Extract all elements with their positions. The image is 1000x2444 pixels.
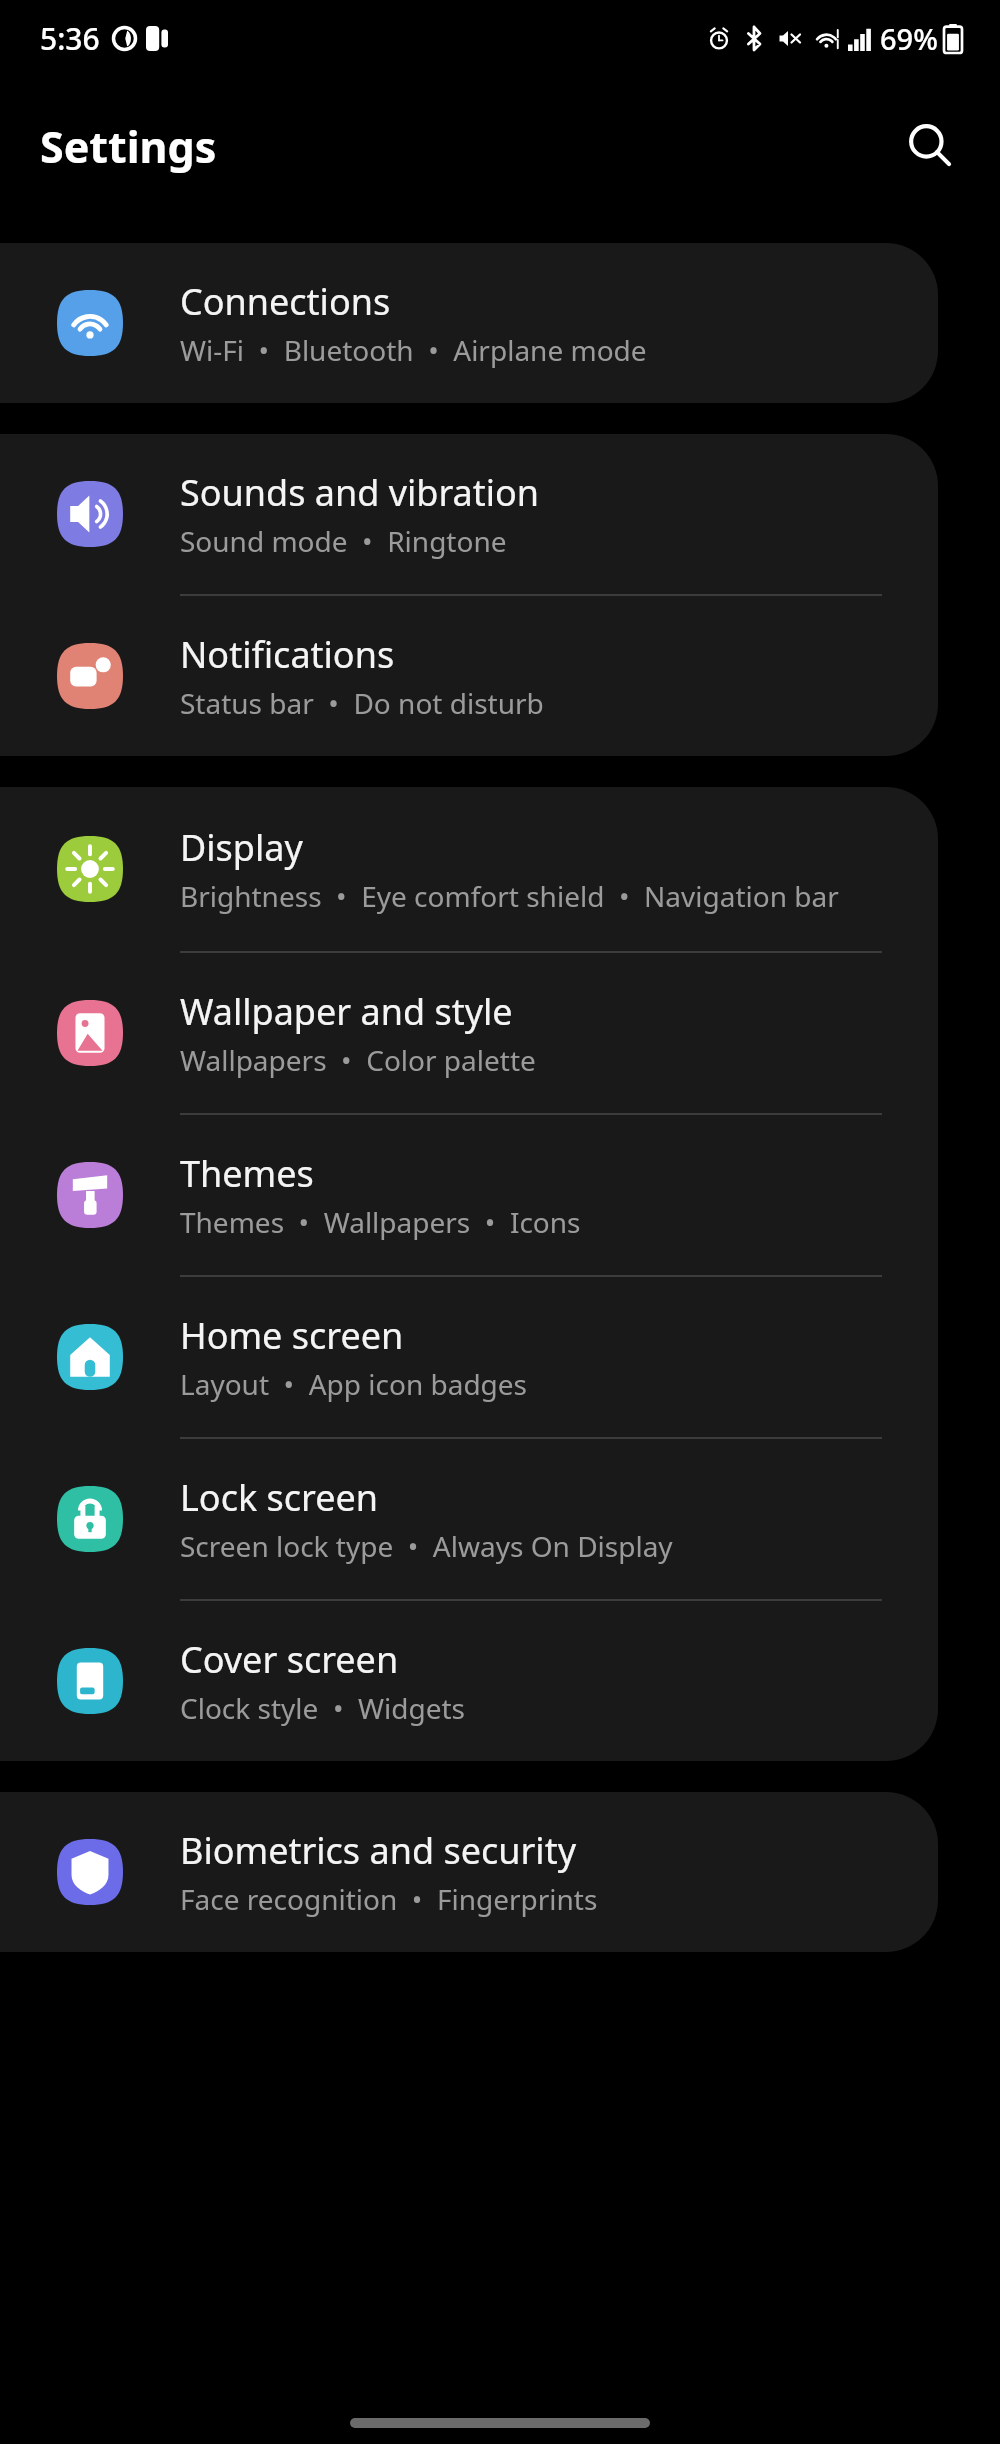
staticText: 69% bbox=[880, 19, 938, 58]
staticText: Biometrics and security bbox=[180, 1826, 577, 1875]
staticText: Home screen bbox=[180, 1311, 404, 1360]
staticText: Cover screen bbox=[180, 1635, 399, 1684]
staticText: Lock screen bbox=[180, 1473, 379, 1522]
staticText: Face recognition • Fingerprints bbox=[180, 1880, 598, 1918]
staticText: Themes bbox=[180, 1149, 314, 1198]
staticText: Screen lock type • Always On Display bbox=[180, 1527, 673, 1565]
button[interactable]: Lock screen bbox=[0, 1439, 938, 1599]
staticText: Wallpapers • Color palette bbox=[180, 1041, 536, 1079]
button[interactable]: Home screen bbox=[0, 1277, 938, 1437]
button[interactable]: Connections bbox=[0, 243, 938, 403]
staticText: Sound mode • Ringtone bbox=[180, 522, 507, 560]
staticText: Layout • App icon badges bbox=[180, 1365, 528, 1403]
staticText: Wi-Fi • Bluetooth • Airplane mode bbox=[180, 331, 647, 369]
button[interactable]: Notifications bbox=[0, 596, 938, 756]
staticText: Wallpaper and style bbox=[180, 987, 513, 1036]
button[interactable]: Search bbox=[885, 101, 975, 191]
staticText: 5:36 bbox=[40, 18, 100, 59]
staticText: Connections bbox=[180, 277, 391, 326]
staticText: Notifications bbox=[180, 630, 395, 679]
staticText: Sounds and vibration bbox=[180, 468, 540, 517]
button[interactable]: Display bbox=[0, 787, 938, 951]
staticText: Themes • Wallpapers • Icons bbox=[180, 1203, 581, 1241]
staticText: Status bar • Do not disturb bbox=[180, 684, 544, 722]
button[interactable]: Sounds and vibration bbox=[0, 434, 938, 594]
staticText: Settings bbox=[40, 117, 217, 176]
button[interactable]: Themes bbox=[0, 1115, 938, 1275]
staticText: Clock style • Widgets bbox=[180, 1689, 466, 1727]
staticText: Display bbox=[180, 823, 303, 872]
button[interactable]: Cover screen bbox=[0, 1601, 938, 1761]
button[interactable]: Biometrics and security bbox=[0, 1792, 938, 1952]
staticText: Brightness • Eye comfort shield • Naviga… bbox=[180, 877, 839, 915]
button[interactable]: Wallpaper and style bbox=[0, 953, 938, 1113]
